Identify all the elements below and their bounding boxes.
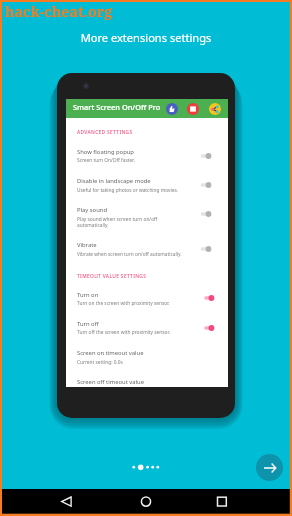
staticText: Turn off bbox=[77, 320, 99, 328]
button[interactable] bbox=[66, 174, 228, 203]
staticText: Turn off the screen with proximity senso… bbox=[77, 329, 170, 336]
button[interactable] bbox=[66, 238, 228, 267]
button[interactable]: More apps bbox=[187, 103, 199, 115]
button[interactable] bbox=[66, 203, 228, 237]
button[interactable]: Toggle bbox=[198, 209, 216, 219]
button[interactable]: Recent apps bbox=[209, 492, 235, 516]
button[interactable]: Toggle bbox=[198, 151, 216, 161]
staticText: Vibrate when screen turn on/off automati… bbox=[77, 251, 182, 258]
staticText: Screen off timeout value bbox=[77, 378, 144, 386]
button[interactable] bbox=[66, 375, 228, 386]
button[interactable]: Toggle bbox=[198, 323, 216, 333]
button[interactable]: Back bbox=[50, 492, 76, 516]
staticText: Play sound bbox=[77, 206, 107, 214]
button[interactable] bbox=[66, 317, 228, 346]
button[interactable]: Next page bbox=[256, 454, 283, 481]
staticText: hack-cheat.org bbox=[5, 2, 113, 21]
button[interactable]: Rate this app bbox=[166, 103, 178, 115]
button[interactable] bbox=[66, 346, 228, 375]
staticText: TIMEOUT VALUE SETTINGS bbox=[77, 273, 147, 280]
staticText: Disable in landscape mode bbox=[77, 177, 151, 185]
staticText: Turn on the screen with proximity sensor… bbox=[77, 300, 170, 307]
staticText: Useful for taking photos or watching mov… bbox=[77, 187, 179, 194]
button[interactable] bbox=[66, 288, 228, 317]
button[interactable] bbox=[66, 145, 228, 174]
staticText: More extensions settings bbox=[0, 30, 292, 45]
staticText: Show floating popup bbox=[77, 148, 134, 156]
button[interactable]: Share bbox=[209, 103, 221, 115]
button[interactable]: Toggle bbox=[198, 244, 216, 254]
button[interactable]: Toggle bbox=[198, 180, 216, 190]
staticText: ADVANCED SETTINGS bbox=[77, 129, 133, 136]
staticText: Screen on timeout value bbox=[77, 349, 144, 357]
button[interactable]: Toggle bbox=[198, 293, 216, 303]
staticText: Play sound when screen turn on/off autom… bbox=[77, 216, 158, 228]
staticText: Smart Screen On/Off Pro bbox=[73, 102, 161, 112]
staticText: Vibrate bbox=[77, 241, 97, 249]
staticText: Current setting: 0.0s bbox=[77, 359, 123, 366]
button[interactable]: Home bbox=[133, 492, 159, 516]
staticText: Turn on bbox=[77, 291, 99, 299]
staticText: Screen turn On/Off faster. bbox=[77, 157, 135, 164]
